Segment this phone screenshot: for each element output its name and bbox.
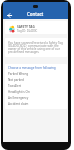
staticText: Accident claim	[8, 102, 29, 106]
staticText: You have scanned/received a Safety Tag (…	[8, 41, 65, 54]
staticText: Parked Wrong	[8, 72, 29, 76]
staticText: SAFETY TAG	[17, 25, 35, 29]
staticText: Headlight is On	[8, 90, 30, 94]
staticText: Tow Alert	[8, 84, 22, 88]
button[interactable]: Headlight is On	[5, 89, 67, 95]
staticText: Contact	[27, 11, 44, 17]
button[interactable]: Parked Wrong	[5, 71, 67, 77]
button[interactable]: Accident claim	[5, 101, 67, 107]
staticText: Not parked	[8, 78, 24, 82]
staticText: Choose a message from following	[8, 66, 56, 70]
staticText: An Emergency	[8, 96, 29, 100]
staticText: Tag ID: DL4D0C	[17, 29, 38, 33]
button[interactable]: Tow Alert	[5, 83, 67, 89]
button[interactable]: An Emergency	[5, 95, 67, 101]
button[interactable]: Back	[4, 10, 15, 20]
button[interactable]: Not parked	[5, 77, 67, 83]
